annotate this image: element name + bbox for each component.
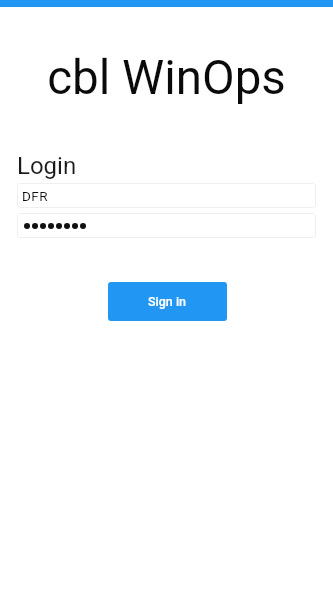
button[interactable]: Sign in xyxy=(108,282,227,321)
staticText: Sign in xyxy=(148,294,187,309)
staticText: DFR xyxy=(22,188,48,204)
staticText: cbl WinOps xyxy=(0,50,333,106)
staticText: Login xyxy=(17,152,77,180)
button[interactable]: Password xyxy=(17,213,316,238)
button[interactable]: User name xyxy=(17,183,316,208)
